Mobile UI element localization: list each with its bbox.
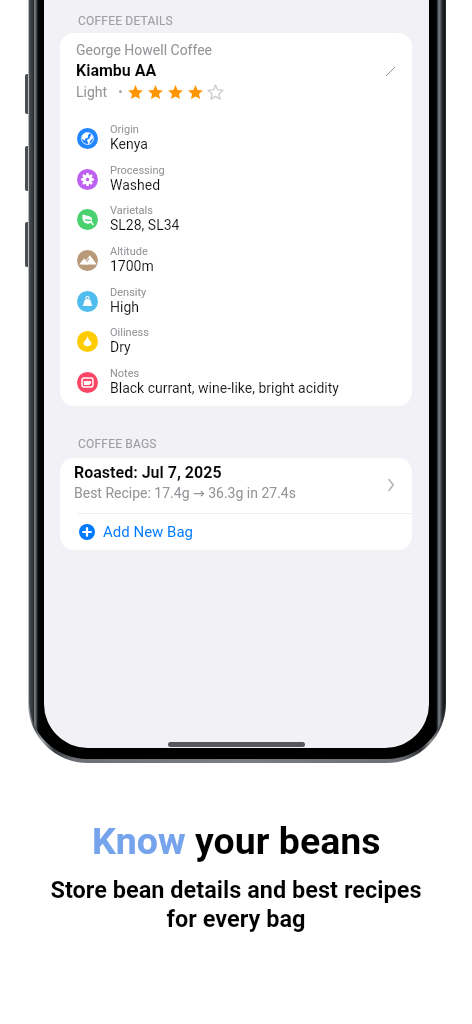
- staticText: Store bean details and best recipes for …: [0, 876, 472, 933]
- staticText: Notes: [110, 367, 140, 380]
- staticText: COFFEE DETAILS: [78, 14, 173, 28]
- staticText: Know: [92, 819, 195, 863]
- button[interactable]: Add New Bag: [60, 514, 412, 550]
- staticText: Oiliness: [110, 326, 149, 339]
- staticText: your beans: [195, 819, 381, 863]
- staticText: 1700m: [110, 258, 154, 274]
- staticText: Roasted: Jul 7, 2025: [74, 463, 222, 482]
- staticText: Dry: [110, 339, 131, 355]
- staticText: Light: [76, 84, 108, 100]
- button[interactable]: Varietals: [77, 204, 412, 234]
- staticText: High: [110, 299, 139, 315]
- staticText: George Howell Coffee: [76, 42, 213, 58]
- button[interactable]: Processing: [77, 164, 412, 194]
- button[interactable]: Edit: [377, 58, 403, 84]
- staticText: COFFEE BAGS: [78, 437, 157, 451]
- button[interactable]: Oiliness: [77, 326, 412, 356]
- button[interactable]: Altitude: [77, 245, 412, 275]
- staticText: Processing: [110, 164, 165, 177]
- staticText: Washed: [110, 177, 161, 193]
- staticText: SL28, SL34: [110, 217, 180, 233]
- button[interactable]: Notes: [77, 367, 412, 397]
- staticText: Density: [110, 286, 147, 299]
- staticText: Altitude: [110, 245, 148, 258]
- staticText: Add New Bag: [103, 523, 193, 541]
- staticText: Kiambu AA: [76, 61, 157, 80]
- button[interactable]: Density: [77, 286, 412, 316]
- staticText: Kenya: [110, 136, 148, 152]
- button[interactable]: [60, 458, 412, 513]
- staticText: Varietals: [110, 204, 153, 217]
- staticText: Black currant, wine-like, bright acidity: [110, 380, 339, 396]
- staticText: Origin: [110, 123, 139, 136]
- staticText: Best Recipe: 17.4g → 36.3g in 27.4s: [74, 485, 296, 501]
- button[interactable]: Origin: [77, 123, 412, 153]
